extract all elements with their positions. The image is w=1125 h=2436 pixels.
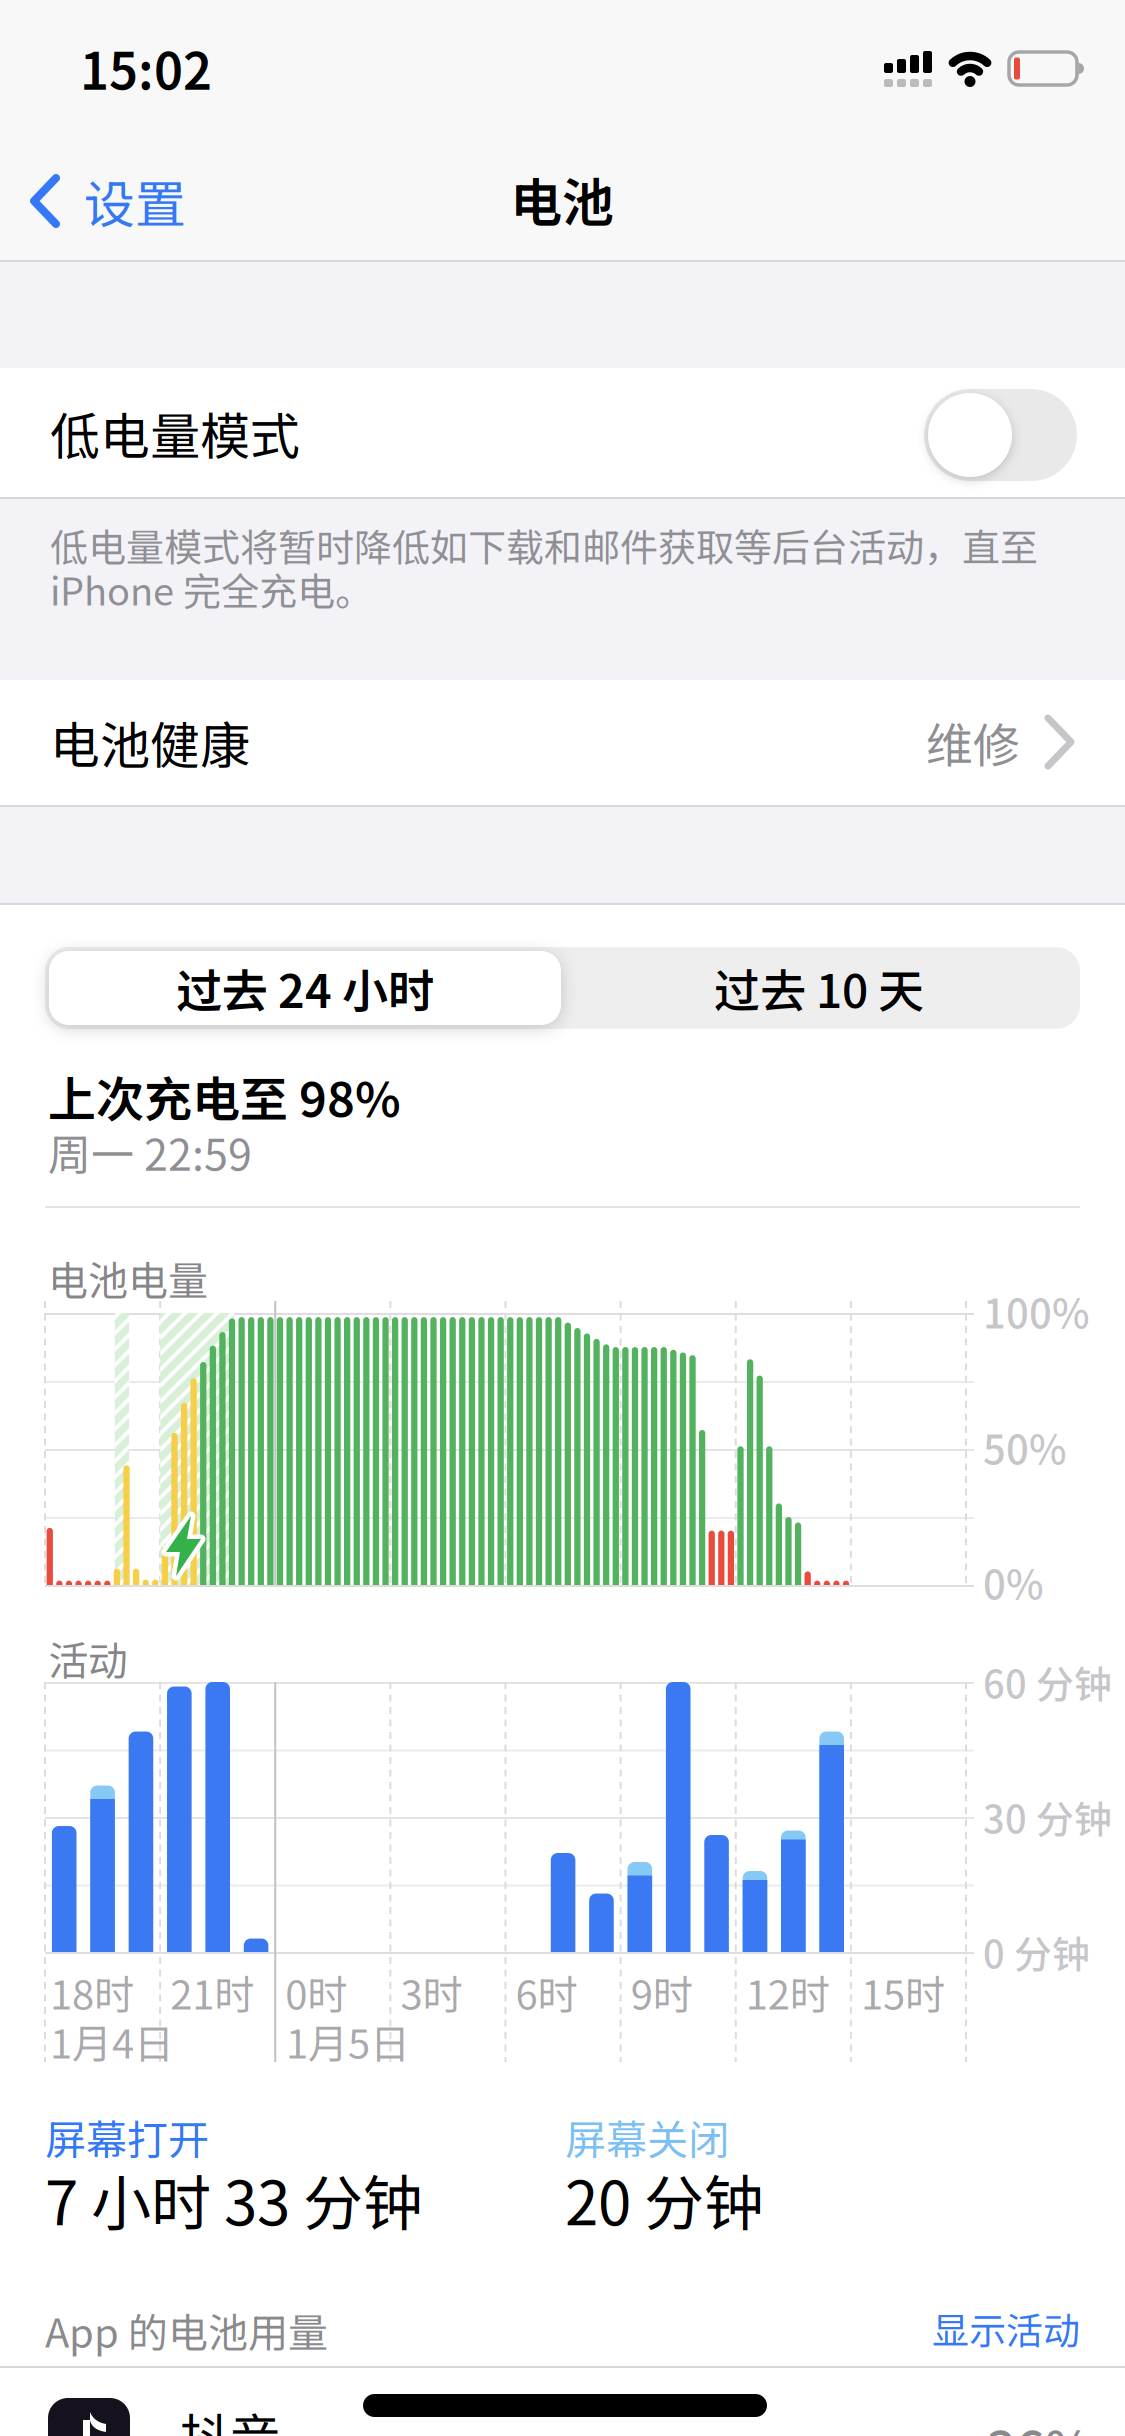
button[interactable]: 电池健康 (0, 680, 1125, 805)
staticText: 低电量模式 (50, 397, 300, 469)
staticText: 0% (983, 1553, 1044, 1611)
staticText: 显示活动 (932, 2301, 1080, 2355)
staticText: 1月5日 (286, 2012, 410, 2070)
staticText: 21时 (170, 1963, 254, 2021)
staticText: 15:02 (80, 32, 212, 104)
button[interactable]: 过去 10 天 (563, 951, 1075, 1025)
staticText: 50% (983, 1418, 1067, 1476)
button[interactable]: 设置 (30, 170, 260, 232)
staticText: 60 分钟 (983, 1654, 1112, 1709)
staticText: 屏幕打开 (45, 2107, 209, 2167)
button[interactable]: 过去 24 小时 (49, 951, 561, 1025)
staticText: 周一 22:59 (48, 1121, 252, 1183)
staticText: 100% (983, 1282, 1090, 1340)
staticText: 过去 10 天 (714, 955, 924, 1021)
staticText: 20 分钟 (565, 2156, 764, 2242)
staticText: 活动 (48, 1629, 128, 1687)
staticText: 1月4日 (50, 2012, 174, 2070)
staticText: 电池健康 (50, 706, 250, 778)
staticText: App 的电池用量 (45, 2301, 328, 2359)
staticText: 3时 (400, 1963, 462, 2021)
staticText: iPhone 完全充电。 (50, 561, 373, 616)
staticText: 0 分钟 (983, 1924, 1090, 1979)
staticText: 12时 (746, 1963, 830, 2021)
button[interactable]: 显示活动 (820, 2293, 1080, 2363)
staticText: 电池电量 (48, 1249, 208, 1307)
staticText: 低电量模式将暂时降低如下载和邮件获取等后台活动，直至 (50, 517, 1038, 572)
staticText: 36% (987, 2410, 1092, 2436)
staticText: 抖音 (180, 2398, 280, 2436)
staticText: 6时 (515, 1963, 577, 2021)
staticText: 15时 (861, 1963, 945, 2021)
staticText: 电池 (510, 161, 614, 237)
button[interactable]: 抖音 (0, 2394, 1125, 2436)
staticText: 屏幕关闭 (565, 2107, 729, 2167)
button[interactable]: 低电量模式 (924, 389, 1077, 481)
staticText: 7 小时 33 分钟 (45, 2156, 423, 2242)
staticText: 过去 24 小时 (176, 955, 434, 1021)
staticText: 设置 (84, 164, 186, 238)
staticText: 0时 (285, 1963, 347, 2021)
staticText: 18时 (50, 1963, 134, 2021)
staticText: 维修 (926, 708, 1020, 776)
staticText: 上次充电至 98% (48, 1061, 401, 1131)
staticText: 9时 (631, 1963, 693, 2021)
staticText: 30 分钟 (983, 1789, 1112, 1844)
